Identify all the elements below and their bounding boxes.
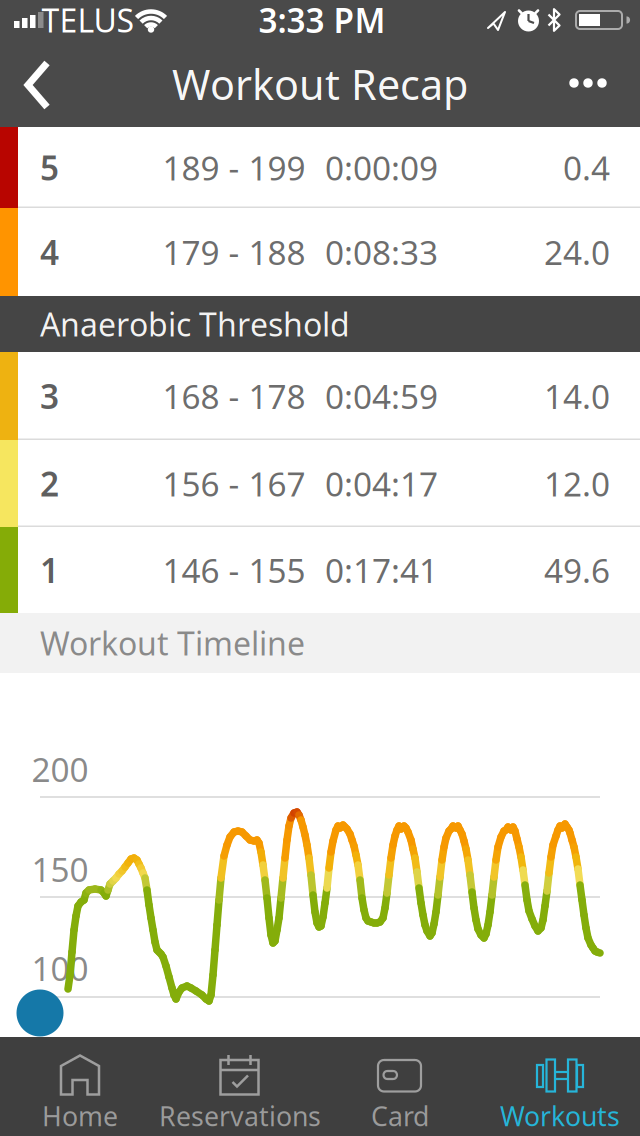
staticText: 146 - 155 <box>162 548 305 592</box>
staticText: 156 - 167 <box>162 461 305 506</box>
staticText: 14.0 <box>544 374 610 418</box>
staticText: 200 <box>31 747 88 791</box>
staticText: 168 - 178 <box>162 374 305 418</box>
button[interactable]: Card <box>320 1037 480 1136</box>
staticText: 150 <box>31 847 88 891</box>
staticText: Anaerobic Threshold <box>40 303 350 345</box>
staticText: 100 <box>31 946 88 990</box>
button[interactable]: Back <box>0 40 80 127</box>
staticText: 3 <box>40 374 59 418</box>
staticText: Workouts <box>500 1098 620 1134</box>
button[interactable]: More <box>560 40 616 127</box>
staticText: 12.0 <box>544 461 610 506</box>
staticText: 5 <box>40 145 59 190</box>
staticText: 2 <box>40 461 59 506</box>
button[interactable]: Chat <box>16 989 64 1037</box>
staticText: 0:00:09 <box>325 145 438 190</box>
staticText: Home <box>42 1098 118 1134</box>
staticText: 1 <box>40 548 59 592</box>
staticText: Workout Timeline <box>40 622 305 664</box>
button[interactable]: Workouts <box>480 1037 640 1136</box>
button[interactable]: Home <box>0 1037 160 1136</box>
staticText: 0:04:59 <box>325 374 438 418</box>
staticText: 0:17:41 <box>325 548 438 592</box>
staticText: 4 <box>40 230 59 274</box>
staticText: 0:04:17 <box>325 461 438 506</box>
staticText: 24.0 <box>544 230 610 274</box>
staticText: 0:08:33 <box>325 230 438 274</box>
staticText: 49.6 <box>544 548 610 592</box>
staticText: TELUS <box>41 0 134 41</box>
staticText: 179 - 188 <box>162 230 305 274</box>
staticText: Reservations <box>159 1098 321 1134</box>
staticText: Workout Recap <box>172 57 468 111</box>
staticText: Card <box>371 1098 429 1134</box>
button[interactable]: Reservations <box>160 1037 320 1136</box>
staticText: 189 - 199 <box>162 145 305 190</box>
staticText: 0.4 <box>563 145 610 190</box>
staticText: 3:33 PM <box>258 0 385 42</box>
